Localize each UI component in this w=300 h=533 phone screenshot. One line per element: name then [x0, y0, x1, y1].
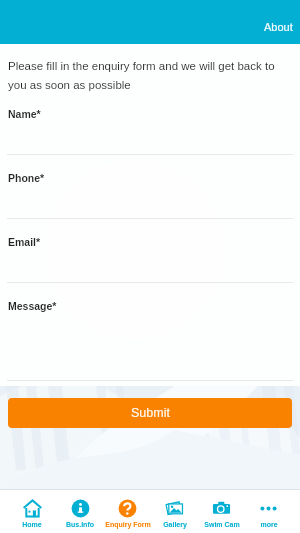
staticText: About [264, 21, 293, 33]
button[interactable]: more [245, 490, 292, 533]
staticText: Enquiry Form [105, 521, 151, 529]
button[interactable]: Phone* [0, 172, 300, 219]
button[interactable]: About [254, 17, 300, 37]
staticText: Phone* [8, 172, 45, 184]
staticText: Email* [8, 236, 41, 248]
staticText: more [260, 521, 278, 529]
button[interactable]: Gallery [151, 490, 198, 533]
staticText: Name* [8, 108, 41, 120]
button[interactable]: Email* [0, 236, 300, 283]
button[interactable]: Submit [8, 398, 292, 428]
button[interactable]: Swim Cam [198, 490, 245, 533]
button[interactable]: Message* [0, 300, 300, 381]
button[interactable]: Enquiry Form [104, 490, 151, 533]
staticText: Submit [131, 406, 170, 420]
staticText: Home [22, 521, 42, 529]
button[interactable]: Home [8, 490, 56, 533]
staticText: Gallery [163, 521, 187, 529]
staticText: Please fill in the enquiry form and we w… [8, 60, 292, 91]
staticText: Swim Cam [204, 521, 240, 529]
button[interactable]: Name* [0, 108, 300, 155]
staticText: Message* [8, 300, 57, 312]
button[interactable]: Bus.Info [56, 490, 104, 533]
staticText: Bus.Info [66, 521, 94, 529]
